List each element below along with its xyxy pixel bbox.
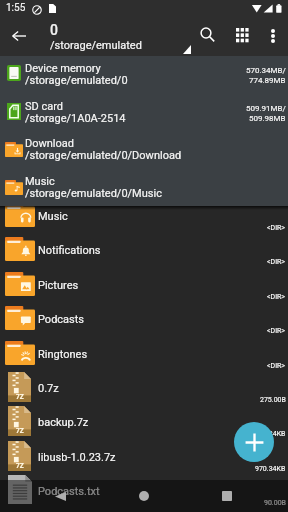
staticText: <DIR>: [267, 258, 286, 266]
button[interactable]: New item: [234, 422, 274, 462]
button[interactable]: Music: [0, 198, 288, 232]
button[interactable]: Device memory: [0, 56, 288, 94]
staticText: /storage/emulated: [50, 39, 142, 52]
staticText: Notifications: [38, 244, 101, 257]
button[interactable]: Recent apps: [215, 480, 239, 512]
staticText: 7Z: [16, 462, 24, 470]
button[interactable]: 7Z: [0, 439, 288, 473]
staticText: 90.00B: [264, 499, 286, 507]
button[interactable]: Download: [0, 131, 288, 169]
staticText: <DIR>: [267, 327, 286, 335]
button[interactable]: 7Z: [0, 370, 288, 404]
staticText: 0: [50, 22, 58, 38]
button[interactable]: 7Z: [0, 404, 288, 438]
staticText: /storage/1A0A-2514: [25, 112, 126, 125]
staticText: 509.98MB: [249, 114, 286, 123]
staticText: 509.91MB/: [246, 104, 286, 113]
button[interactable]: More options: [260, 23, 285, 48]
staticText: 1:55: [6, 2, 26, 14]
staticText: backup.7z: [38, 416, 89, 429]
staticText: Music: [25, 175, 55, 188]
button[interactable]: Pictures: [0, 267, 288, 301]
button[interactable]: Search: [195, 23, 220, 48]
staticText: Download: [25, 137, 74, 150]
staticText: Podcasts: [38, 313, 85, 326]
staticText: Device memory: [25, 62, 101, 75]
button[interactable]: Podcasts.txt: [0, 473, 288, 507]
staticText: Music: [38, 210, 68, 223]
button[interactable]: Ringtones: [0, 336, 288, 370]
staticText: <DIR>: [267, 362, 286, 370]
button[interactable]: Back: [48, 480, 72, 512]
staticText: Ringtones: [38, 348, 88, 361]
button[interactable]: Home: [132, 480, 156, 512]
staticText: 275.00B: [260, 396, 286, 404]
staticText: 0.7z: [38, 382, 59, 395]
button[interactable]: Notifications: [0, 232, 288, 266]
staticText: /storage/emulated/0/Download: [25, 149, 182, 162]
button[interactable]: Music: [0, 169, 288, 207]
staticText: 7Z: [16, 393, 24, 401]
staticText: /storage/emulated/0/Music: [25, 187, 162, 200]
staticText: 7Z: [16, 427, 24, 435]
staticText: 1.34KB: [263, 430, 286, 438]
staticText: Pictures: [38, 279, 79, 292]
staticText: <DIR>: [267, 293, 286, 301]
button[interactable]: Podcasts: [0, 301, 288, 335]
staticText: SD card: [25, 100, 64, 113]
staticText: /storage/emulated/0: [25, 74, 128, 87]
button[interactable]: SD card: [0, 94, 288, 132]
staticText: 970.34KB: [255, 465, 286, 473]
staticText: libusb-1.0.23.7z: [38, 451, 116, 464]
staticText: 570.34MB/: [246, 66, 286, 75]
button[interactable]: Navigate up: [6, 23, 32, 49]
button[interactable]: Change view: [230, 23, 255, 48]
staticText: <DIR>: [267, 224, 286, 232]
staticText: 774.89MB: [249, 76, 286, 85]
staticText: Podcasts.txt: [38, 485, 100, 498]
